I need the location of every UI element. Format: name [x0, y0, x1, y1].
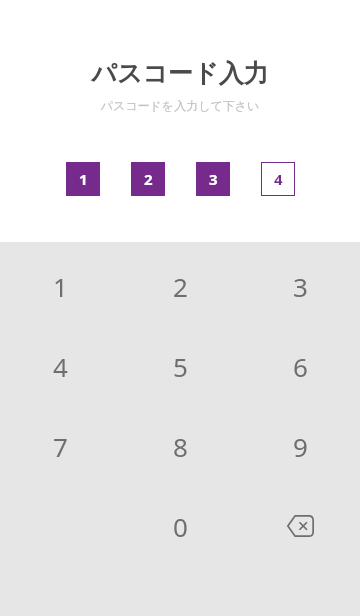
staticText: 3: [293, 269, 308, 304]
button[interactable]: Backspace: [240, 486, 360, 566]
staticText: 9: [293, 429, 308, 464]
staticText: 3: [209, 169, 218, 189]
staticText: パスコード入力: [0, 58, 360, 89]
staticText: 2: [173, 269, 188, 304]
button[interactable]: 4: [0, 326, 120, 406]
staticText: 8: [173, 429, 188, 464]
button[interactable]: 3: [240, 246, 360, 326]
button[interactable]: 3: [196, 162, 230, 196]
button[interactable]: 2: [120, 246, 240, 326]
staticText: 6: [293, 349, 308, 384]
button[interactable]: 7: [0, 406, 120, 486]
staticText: 0: [173, 509, 188, 544]
staticText: 1: [79, 169, 88, 189]
button[interactable]: 5: [120, 326, 240, 406]
staticText: 5: [173, 349, 188, 384]
staticText: 1: [53, 269, 68, 304]
button[interactable]: 8: [120, 406, 240, 486]
staticText: 2: [144, 169, 153, 189]
staticText: 7: [53, 429, 68, 464]
button[interactable]: 2: [131, 162, 165, 196]
staticText: 4: [274, 169, 283, 189]
button[interactable]: 9: [240, 406, 360, 486]
staticText: 4: [53, 349, 68, 384]
button[interactable]: 1: [66, 162, 100, 196]
button[interactable]: 1: [0, 246, 120, 326]
button[interactable]: 0: [120, 486, 240, 566]
button[interactable]: 6: [240, 326, 360, 406]
button[interactable]: 4: [261, 162, 295, 196]
staticText: パスコードを入力して下さい: [0, 98, 360, 113]
